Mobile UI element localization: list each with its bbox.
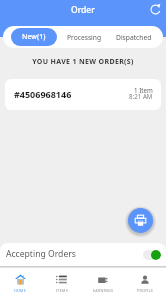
button[interactable]: PROFILE bbox=[124, 268, 166, 296]
button[interactable]: Accepting Orders toggle bbox=[143, 250, 161, 260]
staticText: Dispatched bbox=[116, 33, 152, 42]
button[interactable]: Print bbox=[128, 208, 153, 233]
button[interactable]: EARNINGS bbox=[82, 268, 124, 296]
staticText: 1 Item bbox=[134, 86, 153, 94]
staticText: 8:21 AM bbox=[129, 92, 153, 100]
button[interactable]: Processing bbox=[60, 26, 108, 48]
staticText: HOME bbox=[14, 288, 27, 293]
staticText: Accepting Orders bbox=[6, 248, 76, 260]
staticText: #4506968146 bbox=[14, 88, 72, 100]
staticText: PROFILE bbox=[137, 288, 154, 293]
staticText: EARNINGS bbox=[93, 288, 114, 293]
staticText: New(1) bbox=[22, 32, 46, 42]
button[interactable]: ITEMS bbox=[41, 268, 82, 296]
staticText: ITEMS bbox=[56, 288, 68, 293]
staticText: Processing bbox=[67, 33, 102, 42]
staticText: Order bbox=[71, 4, 95, 16]
button[interactable]: HOME bbox=[0, 268, 41, 296]
staticText: YOU HAVE 1 NEW ORDER(S) bbox=[0, 57, 166, 67]
button[interactable]: New(1) bbox=[11, 28, 57, 46]
button[interactable]: Dispatched bbox=[110, 26, 158, 48]
button[interactable]: Refresh bbox=[148, 2, 163, 17]
button[interactable]: #4506968146 bbox=[5, 79, 161, 110]
